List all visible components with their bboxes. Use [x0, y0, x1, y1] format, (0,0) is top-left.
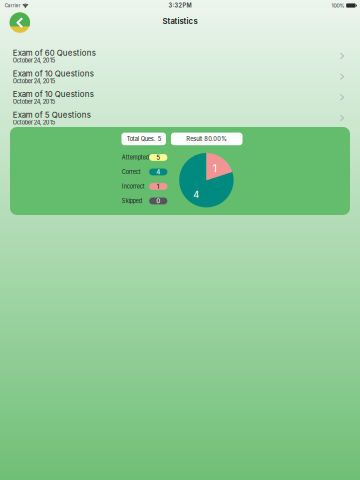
staticText: Exam of 5 Questions	[13, 110, 91, 120]
staticText: Total Ques. 5	[127, 135, 161, 142]
staticText: Exam of 10 Questions	[13, 89, 94, 99]
staticText: 0	[156, 197, 160, 205]
button[interactable]: Exam of 10 Questions	[0, 66, 360, 87]
button[interactable]: Total Ques. 5	[121, 133, 166, 145]
staticText: 4	[193, 189, 199, 200]
staticText: Skipped	[122, 198, 142, 204]
button[interactable]: Exam of 10 Questions	[0, 87, 360, 108]
staticText: 4	[156, 168, 160, 176]
staticText: October 24, 2015	[13, 119, 55, 126]
staticText: Incorrect	[122, 183, 145, 190]
staticText: Result 80.00%	[186, 135, 227, 142]
staticText: Carrier	[5, 3, 21, 8]
staticText: 1	[213, 163, 217, 175]
staticText: October 24, 2015	[13, 98, 55, 105]
staticText: 3:32 PM	[169, 2, 192, 9]
button[interactable]: Back	[10, 12, 30, 33]
staticText: October 24, 2015	[13, 78, 55, 84]
staticText: Attempted	[122, 154, 149, 161]
staticText: Statistics	[162, 16, 197, 26]
button[interactable]: Exam of 60 Questions	[0, 46, 360, 66]
staticText: 100%	[332, 2, 345, 9]
staticText: October 24, 2015	[13, 57, 55, 64]
button[interactable]: Result 80.00%	[171, 133, 242, 145]
staticText: 1	[157, 183, 160, 190]
staticText: 5	[156, 154, 160, 161]
staticText: Exam of 60 Questions	[13, 48, 96, 58]
staticText: Exam of 10 Questions	[13, 69, 94, 78]
button[interactable]: Exam of 5 Questions	[0, 108, 360, 128]
staticText: Correct	[122, 169, 141, 175]
